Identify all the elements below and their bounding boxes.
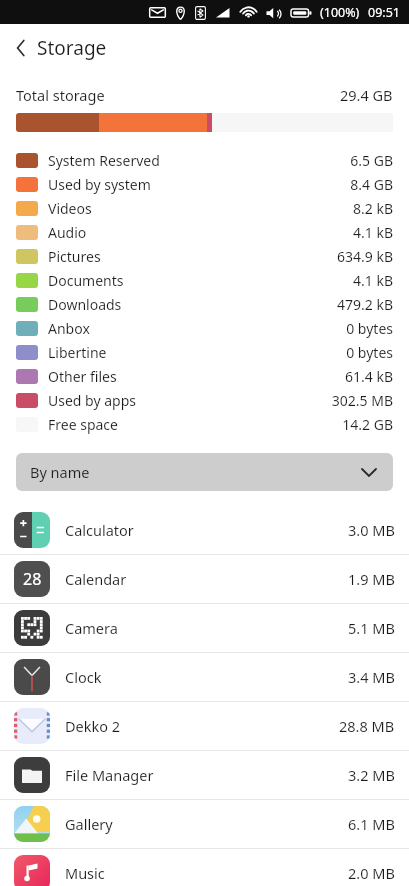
staticText: 5.1 MB — [348, 618, 395, 638]
button[interactable]: Documents — [0, 268, 409, 292]
staticText: 3.2 MB — [348, 765, 395, 785]
staticText: Music — [65, 863, 105, 883]
staticText: 634.9 kB — [337, 247, 393, 266]
staticText: 14.2 GB — [342, 415, 393, 434]
staticText: Other files — [48, 367, 117, 386]
staticText: File Manager — [65, 765, 154, 785]
button[interactable]: Clock — [0, 653, 409, 701]
staticText: 4.1 kB — [353, 223, 393, 242]
staticText: 4.1 kB — [353, 271, 393, 290]
staticText: 0 bytes — [346, 319, 393, 338]
staticText: Pictures — [48, 247, 101, 266]
staticText: Calendar — [65, 569, 127, 589]
button[interactable]: By name — [16, 453, 393, 491]
staticText: Downloads — [48, 295, 122, 314]
button[interactable]: System Reserved — [0, 148, 409, 172]
staticText: Audio — [48, 223, 87, 242]
staticText: Calculator — [65, 520, 134, 540]
staticText: 479.2 kB — [337, 295, 393, 314]
button[interactable]: Pictures — [0, 244, 409, 268]
button[interactable]: Dekko 2 — [0, 702, 409, 750]
staticText: Free space — [48, 415, 118, 434]
button[interactable]: File Manager — [0, 751, 409, 799]
staticText: Total storage — [16, 85, 105, 105]
staticText: Dekko 2 — [65, 716, 121, 736]
staticText: Used by apps — [48, 391, 136, 410]
staticText: 1.9 MB — [348, 569, 395, 589]
staticText: Clock — [65, 667, 102, 687]
button[interactable]: Calculator — [0, 506, 409, 554]
staticText: 0 bytes — [346, 343, 393, 362]
button[interactable]: 28 — [0, 555, 409, 603]
staticText: Anbox — [48, 319, 90, 338]
staticText: 28 — [23, 568, 42, 590]
button[interactable]: Downloads — [0, 292, 409, 316]
staticText: By name — [30, 462, 90, 482]
staticText: 6.1 MB — [348, 814, 395, 834]
button[interactable]: Audio — [0, 220, 409, 244]
button[interactable]: Gallery — [0, 800, 409, 848]
staticText: 28.8 MB — [339, 716, 395, 736]
button[interactable]: Used by apps — [0, 388, 409, 412]
button[interactable]: Free space — [0, 412, 409, 436]
staticText: 09:51 — [368, 4, 400, 21]
staticText: Storage — [37, 35, 107, 61]
staticText: 2.0 MB — [348, 863, 395, 883]
staticText: 8.4 GB — [350, 175, 393, 194]
button[interactable]: Libertine — [0, 340, 409, 364]
staticText: 61.4 kB — [345, 367, 393, 386]
staticText: 8.2 kB — [353, 199, 393, 218]
button[interactable]: Camera — [0, 604, 409, 652]
staticText: 6.5 GB — [350, 151, 393, 170]
button[interactable]: Used by system — [0, 172, 409, 196]
staticText: Gallery — [65, 814, 113, 834]
staticText: Used by system — [48, 175, 151, 194]
staticText: 3.4 MB — [348, 667, 395, 687]
staticText: System Reserved — [48, 151, 160, 170]
staticText: Documents — [48, 271, 124, 290]
button[interactable]: Music — [0, 849, 409, 886]
staticText: Libertine — [48, 343, 107, 362]
button[interactable]: Back — [0, 29, 119, 67]
staticText: Videos — [48, 199, 92, 218]
button[interactable]: Other files — [0, 364, 409, 388]
staticText: 3.0 MB — [348, 520, 395, 540]
staticText: 302.5 MB — [331, 391, 393, 410]
button[interactable]: Anbox — [0, 316, 409, 340]
staticText: Camera — [65, 618, 118, 638]
staticText: (100%) — [320, 4, 360, 21]
staticText: 29.4 GB — [340, 85, 393, 105]
button[interactable]: Videos — [0, 196, 409, 220]
